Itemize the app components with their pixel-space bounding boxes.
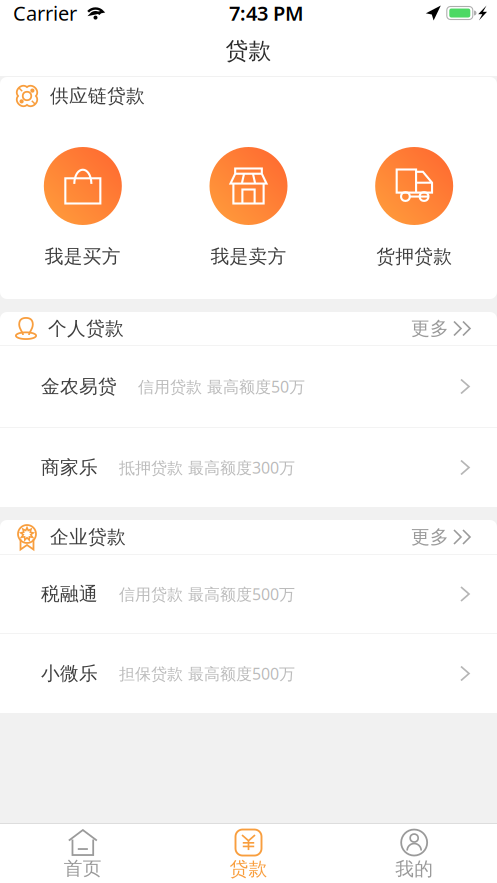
button[interactable]: 更多	[411, 519, 470, 554]
button[interactable]: 商家乐	[0, 428, 497, 507]
button[interactable]: 我是买方	[0, 147, 166, 268]
button[interactable]: 金农易贷	[0, 346, 497, 427]
staticText: 更多	[411, 317, 449, 340]
staticText: 我的	[395, 857, 433, 880]
button[interactable]: 小微乐	[0, 634, 497, 713]
staticText: 金农易贷	[41, 375, 117, 398]
staticText: 企业贷款	[50, 525, 126, 548]
staticText: 首页	[64, 857, 102, 880]
button[interactable]: 贷款	[166, 824, 331, 883]
staticText: 小微乐	[41, 662, 98, 685]
staticText: 个人贷款	[48, 317, 124, 340]
staticText: 商家乐	[41, 456, 98, 479]
staticText: 更多	[411, 525, 449, 548]
button[interactable]: 首页	[0, 824, 166, 883]
staticText: 贷款	[229, 857, 267, 880]
staticText: 担保贷款 最高额度500万	[119, 663, 295, 684]
button[interactable]: 我的	[331, 824, 497, 883]
staticText: 货押贷款	[376, 245, 452, 268]
button[interactable]: 货押贷款	[331, 147, 497, 268]
staticText: 信用贷款 最高额度500万	[119, 583, 295, 605]
button[interactable]: 我是卖方	[166, 147, 331, 268]
staticText: 我是买方	[45, 245, 121, 268]
button[interactable]: 税融通	[0, 555, 497, 633]
staticText: 税融通	[41, 582, 98, 605]
staticText: Carrier	[13, 0, 77, 26]
staticText: 我是卖方	[210, 245, 286, 268]
staticText: 供应链贷款	[50, 84, 145, 107]
button[interactable]: 更多	[411, 311, 470, 346]
staticText: 信用贷款 最高额度50万	[138, 376, 305, 397]
staticText: 贷款	[225, 37, 271, 65]
staticText: 7:43 PM	[229, 0, 304, 26]
staticText: 抵押贷款 最高额度300万	[119, 457, 295, 478]
